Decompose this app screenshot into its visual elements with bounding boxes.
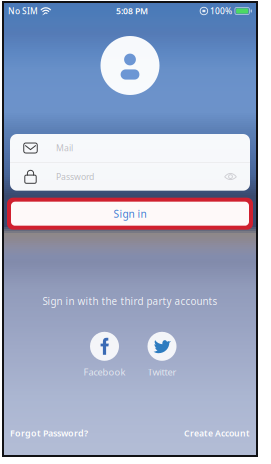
staticText: No SIM — [8, 5, 38, 17]
staticText: Sign in — [113, 207, 146, 220]
staticText: 100% — [210, 5, 232, 17]
staticText: Create Account — [184, 427, 250, 439]
button[interactable]: Twitter — [147, 332, 176, 378]
button[interactable]: Forgot Password? — [10, 427, 88, 439]
staticText: Mail — [56, 142, 73, 154]
staticText: Password — [56, 171, 94, 182]
staticText: Facebook — [83, 366, 125, 378]
staticText: Forgot Password? — [10, 427, 88, 439]
staticText: 5:08 PM — [116, 5, 148, 17]
staticText: Sign in with the third party accounts — [42, 295, 217, 308]
button[interactable]: Create Account — [184, 427, 250, 439]
button[interactable]: Facebook — [83, 332, 125, 378]
staticText: Twitter — [147, 366, 176, 378]
button[interactable]: Sign in — [4, 198, 256, 230]
